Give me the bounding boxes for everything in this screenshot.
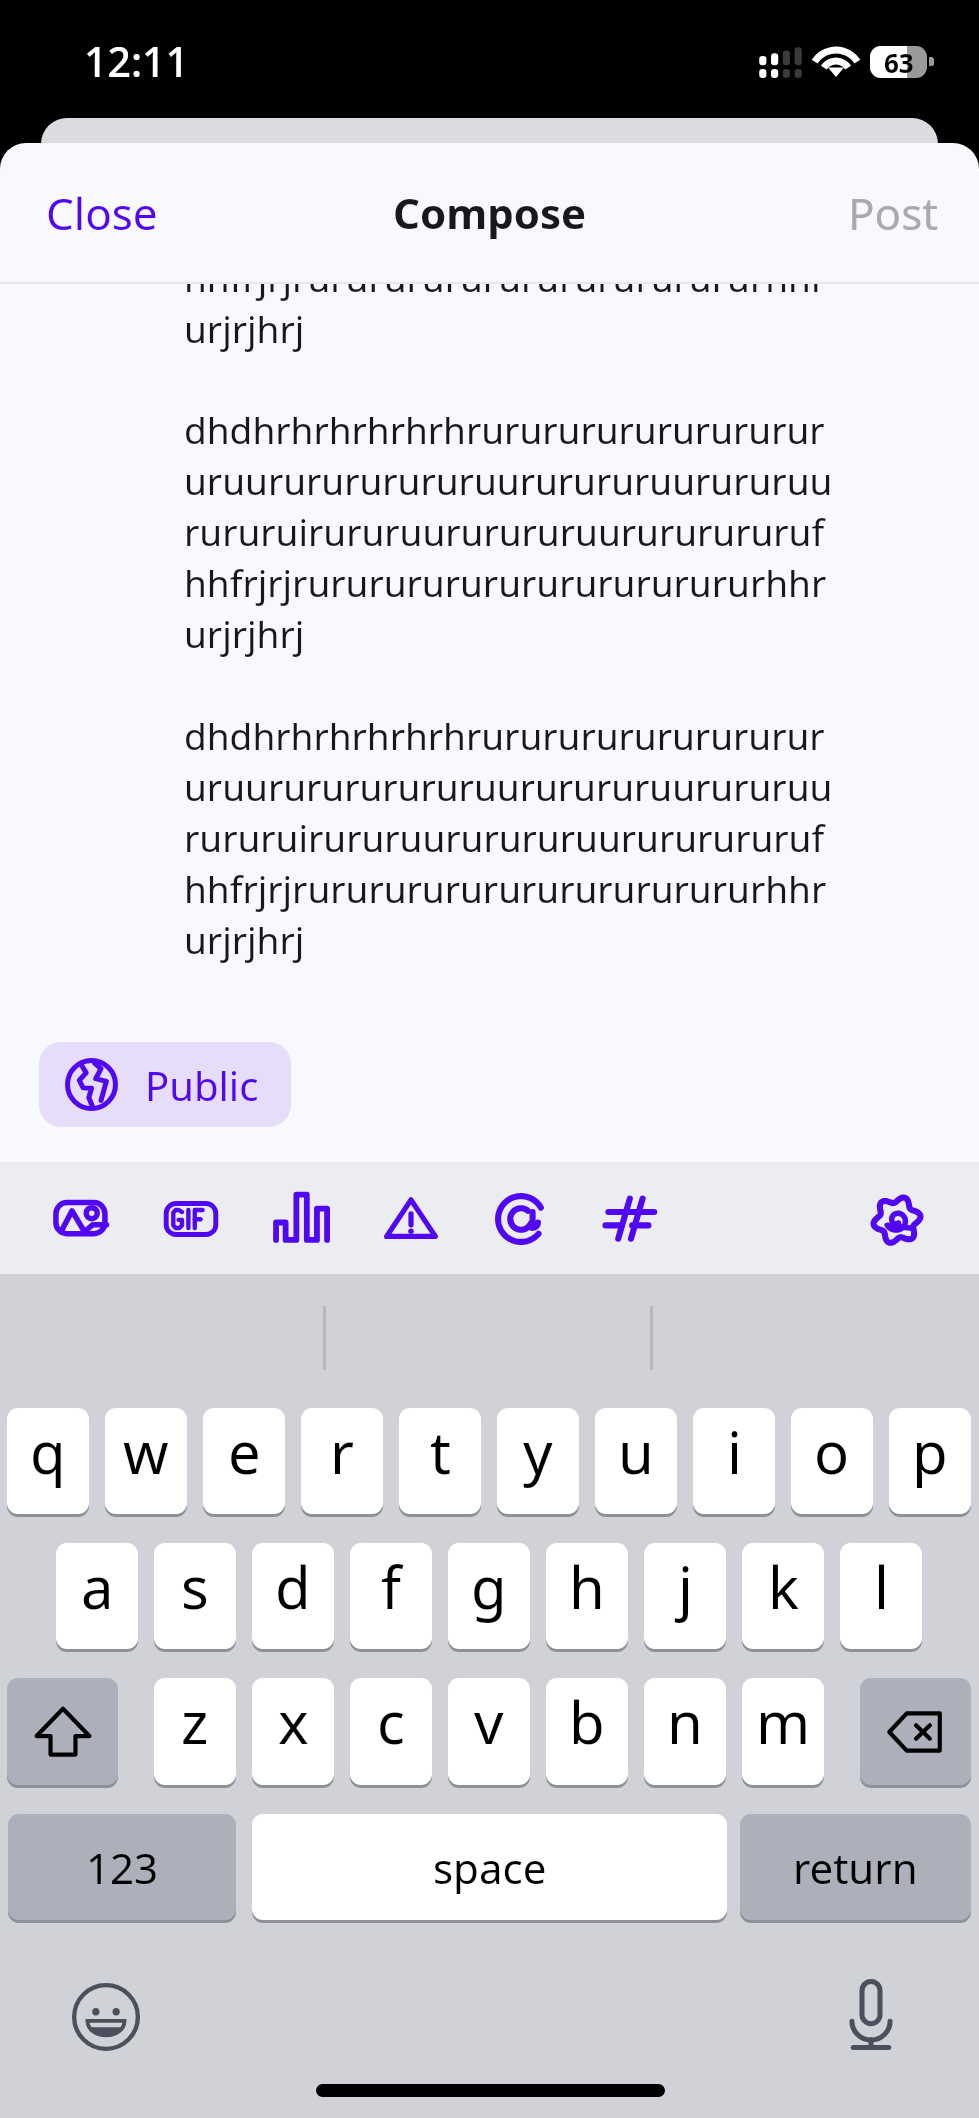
staticText: r: [330, 1412, 354, 1491]
button[interactable]: Post: [830, 165, 957, 261]
staticText: e: [228, 1412, 261, 1491]
button[interactable]: Add poll: [272, 1190, 330, 1248]
staticText: urjrjhrj: [184, 608, 305, 658]
button[interactable]: Post settings: [868, 1190, 926, 1248]
button[interactable]: Mention someone: [492, 1190, 550, 1248]
staticText: rururuirururuururururuurururururuf: [184, 506, 825, 556]
button[interactable]: Add image: [52, 1190, 110, 1248]
button[interactable]: Shift: [7, 1678, 118, 1785]
button[interactable]: Dictation: [847, 1979, 895, 2050]
staticText: i: [727, 1412, 742, 1491]
staticText: 63: [884, 46, 914, 77]
staticText: h: [569, 1547, 605, 1626]
button[interactable]: return: [740, 1814, 971, 1920]
button[interactable]: j: [644, 1543, 726, 1649]
button[interactable]: c: [350, 1678, 432, 1785]
button[interactable]: Add GIF: [162, 1190, 220, 1248]
button[interactable]: e: [203, 1408, 285, 1514]
button[interactable]: s: [154, 1543, 236, 1649]
staticText: 12:11: [84, 33, 189, 89]
button[interactable]: h: [546, 1543, 628, 1649]
button[interactable]: Public: [39, 1042, 291, 1127]
staticText: c: [377, 1682, 405, 1761]
staticText: Public: [145, 1058, 259, 1112]
button[interactable]: u: [595, 1408, 677, 1514]
staticText: b: [569, 1682, 605, 1761]
button[interactable]: o: [791, 1408, 873, 1514]
staticText: x: [278, 1682, 309, 1761]
button[interactable]: 123: [8, 1814, 236, 1920]
staticText: uruururururururuururururuurururuu: [184, 455, 833, 505]
staticText: d: [275, 1547, 311, 1626]
button[interactable]: r: [301, 1408, 383, 1514]
button[interactable]: d: [252, 1543, 334, 1649]
staticText: dhdhrhrhrhrhrhrururururururururur: [184, 710, 825, 760]
staticText: hhfrjrjrururururururururururururhhr: [184, 557, 827, 607]
staticText: rururuirururuururururuurururururuf: [184, 812, 825, 862]
staticText: hhfrjrjrururururururururururururhhr: [184, 863, 827, 913]
staticText: 123: [86, 1839, 159, 1896]
button[interactable]: y: [497, 1408, 579, 1514]
staticText: urjrjhrj: [184, 914, 305, 964]
button[interactable]: g: [448, 1543, 530, 1649]
staticText: n: [667, 1682, 703, 1761]
button[interactable]: Add hashtag: [602, 1190, 660, 1248]
staticText: u: [618, 1412, 654, 1491]
staticText: Close: [46, 183, 158, 243]
button[interactable]: a: [56, 1543, 138, 1649]
button[interactable]: space: [252, 1814, 727, 1920]
staticText: Post: [848, 183, 939, 243]
staticText: v: [474, 1682, 504, 1761]
button[interactable]: t: [399, 1408, 481, 1514]
button[interactable]: i: [693, 1408, 775, 1514]
staticText: space: [433, 1839, 547, 1896]
button[interactable]: Content warning: [382, 1190, 440, 1248]
staticText: return: [793, 1839, 918, 1896]
staticText: a: [81, 1547, 114, 1626]
staticText: k: [768, 1547, 799, 1626]
staticText: m: [756, 1682, 811, 1761]
button[interactable]: q: [7, 1408, 89, 1514]
staticText: Compose: [393, 184, 587, 241]
staticText: uruururururururuururururuurururuu: [184, 761, 833, 811]
button[interactable]: p: [889, 1408, 971, 1514]
button[interactable]: z: [154, 1678, 236, 1785]
staticText: urjrjhrj: [184, 303, 305, 353]
staticText: w: [123, 1412, 169, 1491]
staticText: t: [430, 1412, 451, 1491]
button[interactable]: n: [644, 1678, 726, 1785]
staticText: dhdhrhrhrhrhrhrururururururururur: [184, 404, 825, 454]
button[interactable]: b: [546, 1678, 628, 1785]
staticText: o: [814, 1412, 850, 1491]
button[interactable]: f: [350, 1543, 432, 1649]
staticText: j: [678, 1547, 693, 1626]
button[interactable]: m: [742, 1678, 824, 1785]
staticText: y: [523, 1412, 553, 1491]
button[interactable]: v: [448, 1678, 530, 1785]
staticText: g: [471, 1547, 507, 1626]
button[interactable]: w: [105, 1408, 187, 1514]
staticText: l: [874, 1547, 889, 1626]
staticText: hhfrjrjrururururururururururururhhr: [184, 284, 827, 302]
staticText: q: [30, 1412, 66, 1491]
button[interactable]: x: [252, 1678, 334, 1785]
button[interactable]: Backspace: [860, 1678, 971, 1785]
button[interactable]: k: [742, 1543, 824, 1649]
staticText: p: [912, 1412, 948, 1491]
button[interactable]: Close: [28, 165, 176, 261]
staticText: z: [181, 1682, 209, 1761]
button[interactable]: Emoji keyboard: [71, 1982, 141, 2052]
staticText: f: [381, 1547, 401, 1626]
button[interactable]: l: [840, 1543, 922, 1649]
staticText: s: [181, 1547, 209, 1626]
